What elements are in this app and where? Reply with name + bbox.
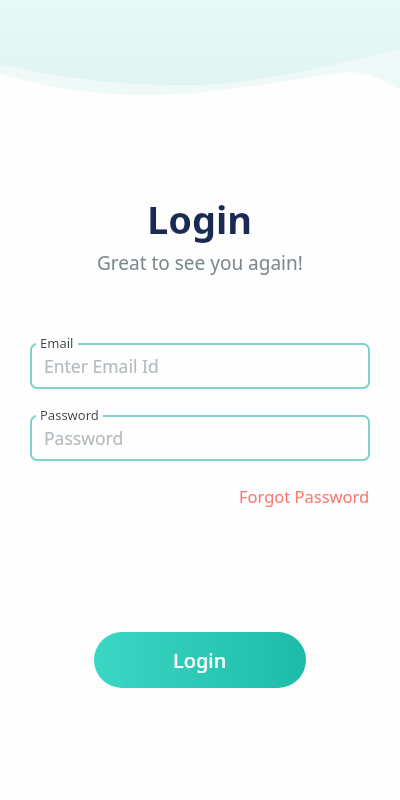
staticText: Enter Email Id	[44, 354, 159, 378]
staticText: Login	[173, 647, 227, 674]
staticText: Login	[147, 193, 253, 245]
button[interactable]: Forgot Password	[239, 485, 370, 507]
button[interactable]: Login	[94, 632, 306, 688]
staticText: Password	[44, 426, 124, 450]
button[interactable]: Password	[30, 415, 370, 461]
staticText: Email	[40, 334, 74, 352]
button[interactable]: Enter Email Id	[30, 343, 370, 389]
staticText: Password	[40, 406, 99, 424]
staticText: Great to see you again!	[97, 250, 303, 276]
